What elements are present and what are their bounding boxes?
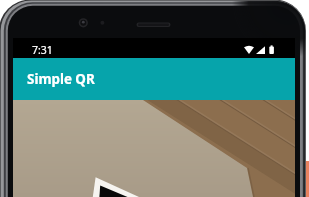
button[interactable]: Simple QR — [13, 58, 295, 100]
staticText: Simple QR — [27, 70, 95, 88]
staticText: 7:31 — [32, 43, 53, 57]
button[interactable] — [13, 100, 295, 197]
